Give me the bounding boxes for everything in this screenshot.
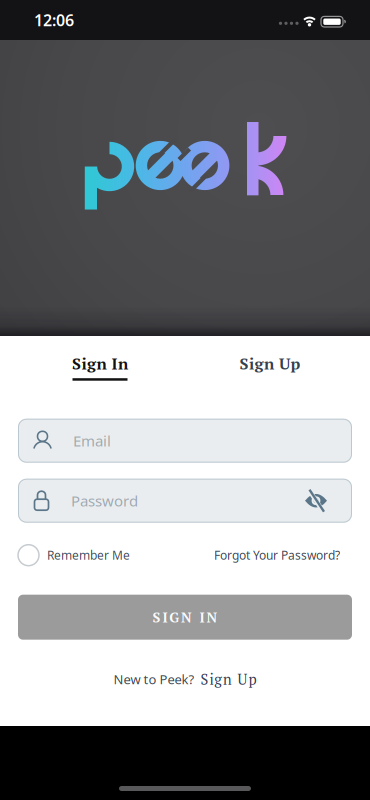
- button[interactable]: Sign In: [15, 353, 185, 381]
- staticText: Password: [71, 491, 138, 511]
- staticText: SIGN IN: [153, 608, 217, 626]
- staticText: 12:06: [34, 9, 74, 31]
- button[interactable]: Sign Up: [185, 353, 355, 381]
- button[interactable]: New to Peek?: [114, 670, 256, 689]
- button[interactable]: Show password: [304, 490, 328, 512]
- staticText: Forgot Your Password?: [214, 547, 340, 563]
- button[interactable]: Password text field: [18, 479, 352, 523]
- staticText: Remember Me: [47, 547, 130, 563]
- button[interactable]: Forgot Your Password?: [214, 547, 340, 563]
- staticText: Sign Up: [239, 353, 300, 374]
- staticText: New to Peek?: [114, 671, 195, 688]
- staticText: Email: [73, 431, 111, 451]
- button[interactable]: SIGN IN: [18, 595, 352, 640]
- button[interactable]: Email text field: [18, 419, 352, 463]
- staticText: Sign In: [72, 353, 128, 374]
- button[interactable]: Remember Me: [18, 545, 130, 566]
- staticText: Sign Up: [201, 670, 256, 689]
